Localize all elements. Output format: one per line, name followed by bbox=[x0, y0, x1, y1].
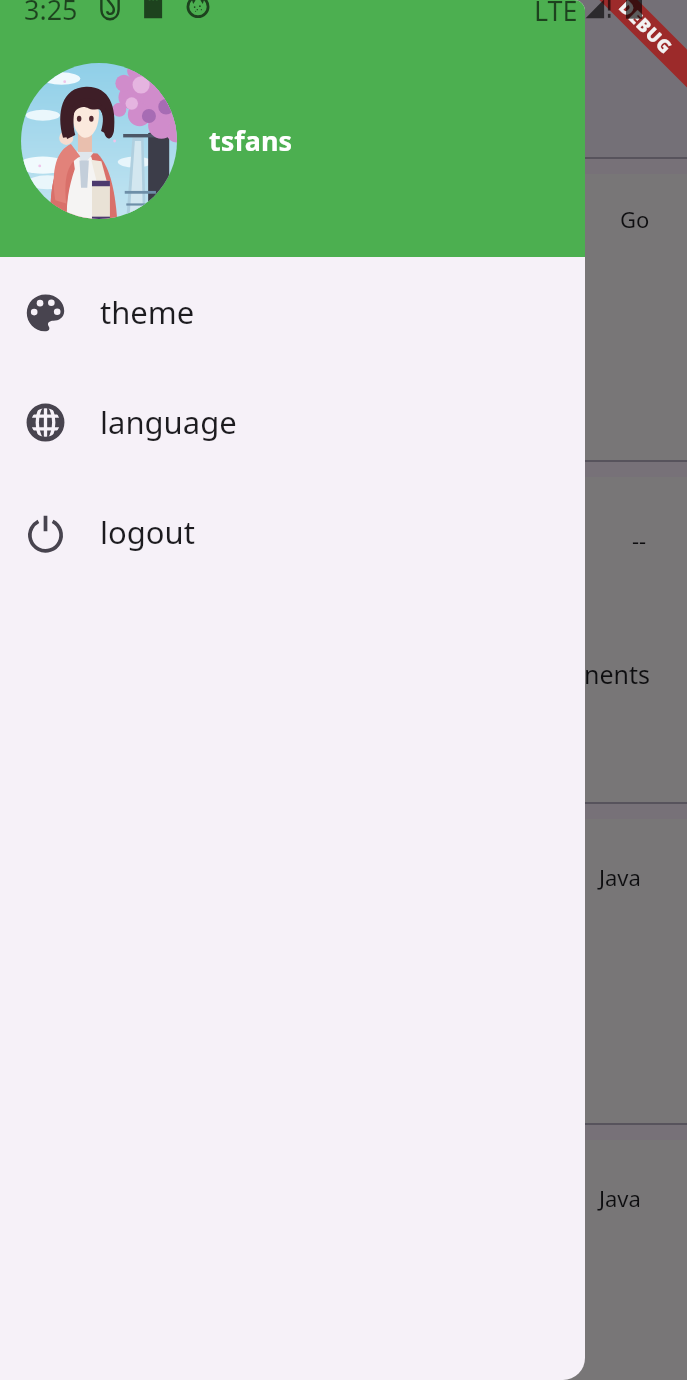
staticText: -- bbox=[632, 525, 647, 555]
button[interactable]: Close navigation drawer bbox=[0, 0, 687, 1380]
button[interactable]: Theme bbox=[0, 257, 585, 367]
button[interactable]: -- bbox=[0, 460, 687, 802]
staticText: Java bbox=[599, 1183, 641, 1213]
staticText: Java bbox=[599, 862, 641, 892]
other: Logout bbox=[26, 513, 65, 552]
staticText: language bbox=[100, 401, 237, 443]
button[interactable]: Go bbox=[0, 157, 687, 460]
button[interactable]: Language bbox=[0, 367, 585, 477]
staticText: theme bbox=[100, 291, 195, 333]
staticText: nents bbox=[584, 657, 651, 691]
staticText: logout bbox=[100, 511, 195, 553]
staticText: 3:25 bbox=[24, 0, 78, 25]
staticText: LTE bbox=[534, 0, 578, 26]
button[interactable]: Logout bbox=[0, 477, 585, 587]
staticText: Go bbox=[620, 204, 650, 234]
staticText: tsfans bbox=[209, 122, 292, 159]
button[interactable]: Java bbox=[0, 802, 687, 1123]
button[interactable]: Java bbox=[0, 1123, 687, 1380]
other: Theme bbox=[26, 293, 65, 332]
staticText: DEBUG bbox=[613, 0, 678, 60]
button[interactable]: tsfans bbox=[0, 0, 585, 257]
other: Language bbox=[26, 403, 65, 442]
